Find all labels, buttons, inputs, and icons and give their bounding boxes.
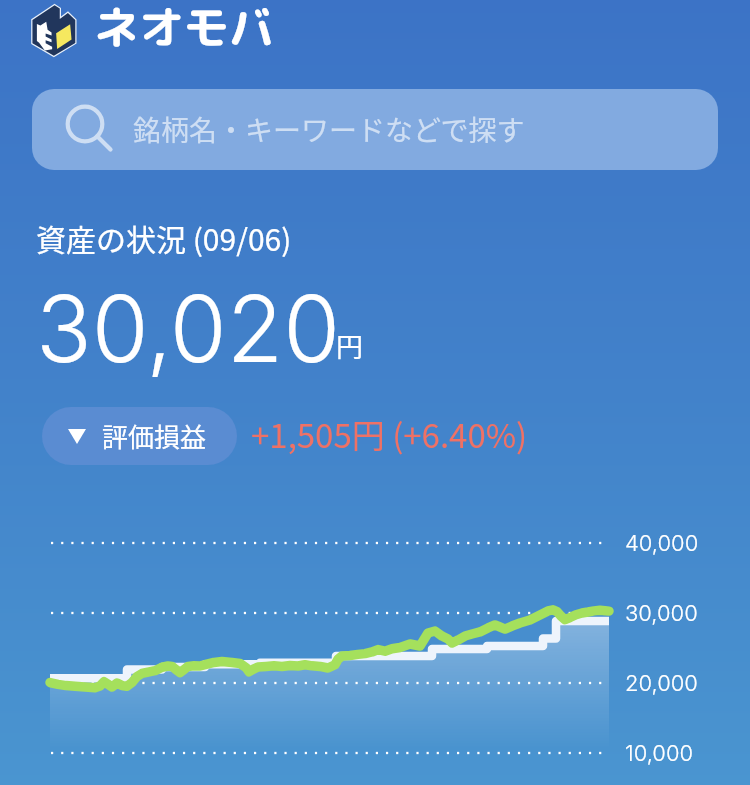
staticText: 資産の状況 (09/06)	[36, 216, 292, 259]
button[interactable]: ネオモバ	[0, 0, 750, 58]
staticText: 30,020	[36, 273, 340, 384]
staticText: 40,000	[625, 530, 699, 557]
button[interactable]: Search	[32, 89, 718, 170]
staticText: +1,505円 (+6.40%)	[251, 410, 528, 458]
staticText: 銘柄名・キーワードなどで探す	[133, 109, 525, 150]
staticText: ネオモバ	[94, 0, 275, 54]
other: Search	[60, 103, 114, 157]
staticText: 30,000	[625, 600, 698, 627]
staticText: 円	[336, 326, 363, 365]
staticText: 10,000	[625, 740, 694, 767]
staticText: 評価損益	[102, 417, 207, 455]
staticText: 20,000	[625, 670, 698, 697]
button[interactable]: 評価損益	[42, 407, 237, 465]
